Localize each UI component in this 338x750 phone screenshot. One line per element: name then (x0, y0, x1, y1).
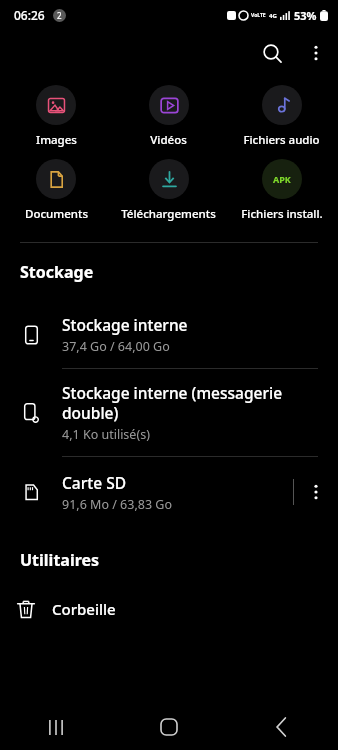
button[interactable]: Images (0, 85, 112, 148)
button[interactable]: Options Carte SD (294, 470, 338, 514)
button[interactable]: Stockage interne (messagerie double) (0, 369, 338, 456)
button[interactable]: Documents (0, 159, 112, 222)
staticText: Stockage interne (62, 314, 188, 335)
staticText: 37,4 Go / 64,00 Go (62, 338, 170, 355)
button[interactable]: Accueil (112, 704, 225, 750)
button[interactable]: Corbeille (0, 587, 338, 631)
button[interactable]: Carte SD (0, 457, 338, 527)
staticText: APK (273, 173, 291, 185)
staticText: Fichiers install. (241, 206, 323, 222)
staticText: Téléchargements (121, 206, 216, 222)
button[interactable]: Téléchargements (112, 159, 225, 222)
staticText: Stockage interne (messagerie double) (62, 382, 318, 423)
staticText: Carte SD (62, 472, 126, 493)
button[interactable]: Stockage interne (0, 301, 338, 368)
staticText: VoLTE (251, 12, 266, 19)
staticText: 91,6 Mo / 63,83 Go (62, 496, 172, 513)
staticText: 4G (269, 12, 277, 20)
staticText: 53% (294, 8, 317, 23)
staticText: Vidéos (150, 132, 187, 148)
button[interactable]: Applications récentes (0, 704, 112, 750)
button[interactable]: Plus d'options (294, 31, 338, 75)
button[interactable]: Fichiers audio (225, 85, 338, 148)
button[interactable]: Vidéos (112, 85, 225, 148)
staticText: 2 (57, 10, 62, 21)
button[interactable]: APK (225, 159, 338, 222)
staticText: Stockage (20, 261, 94, 283)
staticText: Images (36, 132, 77, 148)
staticText: Documents (25, 206, 88, 222)
staticText: Corbeille (52, 599, 116, 619)
button[interactable]: Rechercher (250, 31, 294, 75)
staticText: 06:26 (14, 7, 45, 23)
button[interactable]: Retour (225, 704, 338, 750)
staticText: Fichiers audio (243, 132, 320, 148)
staticText: Utilitaires (20, 549, 100, 571)
staticText: 4,1 Ko utilisé(s) (62, 426, 150, 443)
